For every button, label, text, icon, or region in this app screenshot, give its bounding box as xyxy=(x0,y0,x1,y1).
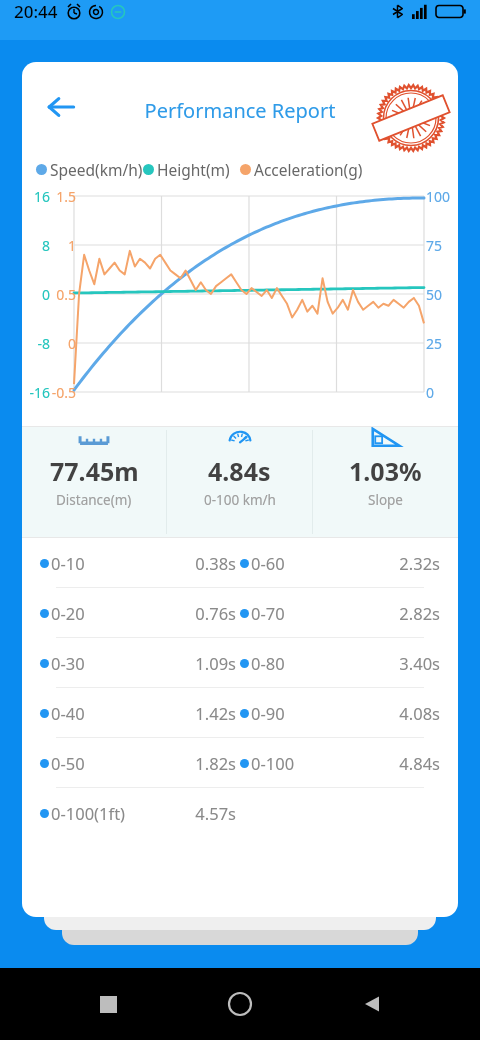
staticText: 0-30 xyxy=(51,652,85,674)
staticText: 0-10 xyxy=(51,552,85,574)
staticText: 4.08s xyxy=(240,702,440,724)
staticText: 1.5 xyxy=(50,187,76,206)
staticText: -0.5 xyxy=(50,383,76,402)
button[interactable]: 0-100(1ft) xyxy=(40,788,440,837)
staticText: 16 xyxy=(24,187,50,206)
staticText: 0 xyxy=(50,334,76,353)
staticText: 1.03% xyxy=(349,454,422,488)
staticText: 1.42s xyxy=(40,702,236,724)
staticText: 0-20 xyxy=(51,602,85,624)
staticText: Speed(km/h) xyxy=(50,159,143,180)
staticText: 1 xyxy=(50,236,76,255)
staticText: -8 xyxy=(24,334,50,353)
button[interactable]: 0-30 xyxy=(40,638,440,687)
staticText: 8 xyxy=(24,236,50,255)
staticText: 0.38s xyxy=(40,552,236,574)
staticText: 0-80 xyxy=(251,652,285,674)
staticText: 77.45m xyxy=(50,454,139,488)
staticText: 0.76s xyxy=(40,602,236,624)
button[interactable]: 0-50 xyxy=(40,738,440,787)
button[interactable]: 0-10 xyxy=(40,538,440,587)
staticText: Performance Report xyxy=(22,97,458,124)
button[interactable]: Home xyxy=(216,980,264,1028)
staticText: 100 xyxy=(426,187,458,206)
staticText: 0-100(1ft) xyxy=(51,802,126,824)
button[interactable]: 4.84s xyxy=(167,426,312,509)
staticText: 0 xyxy=(24,285,50,304)
staticText: 0-100 km/h xyxy=(204,491,276,509)
staticText: 0-60 xyxy=(251,552,285,574)
staticText: Slope xyxy=(368,491,403,509)
button[interactable]: Back xyxy=(348,980,396,1028)
button[interactable]: Back xyxy=(38,84,84,130)
staticText: 25 xyxy=(426,334,458,353)
staticText: Acceleration(g) xyxy=(254,159,363,180)
staticText: 3.40s xyxy=(240,652,440,674)
staticText: 2.32s xyxy=(240,552,440,574)
staticText: 50 xyxy=(426,285,458,304)
staticText: 4.84s xyxy=(240,752,440,774)
button[interactable]: 1.03% xyxy=(313,426,458,509)
staticText: 75 xyxy=(426,236,458,255)
staticText: 0 xyxy=(426,383,458,402)
staticText: 0-90 xyxy=(251,702,285,724)
staticText: 1.09s xyxy=(40,652,236,674)
staticText: 4.84s xyxy=(208,454,271,488)
staticText: 1.82s xyxy=(40,752,236,774)
staticText: 4.57s xyxy=(40,802,236,824)
staticText: 20:44 xyxy=(14,0,58,23)
button[interactable]: 77.45m xyxy=(22,426,166,509)
button[interactable]: Recent apps xyxy=(84,980,132,1028)
staticText: 0-100 xyxy=(251,752,295,774)
button[interactable]: 0-20 xyxy=(40,588,440,637)
staticText: 0-50 xyxy=(51,752,85,774)
staticText: 0.5 xyxy=(50,285,76,304)
staticText: Distance(m) xyxy=(56,491,132,509)
staticText: 2.82s xyxy=(240,602,440,624)
staticText: 0-40 xyxy=(51,702,85,724)
staticText: 0-70 xyxy=(251,602,285,624)
button[interactable]: 0-40 xyxy=(40,688,440,737)
staticText: -16 xyxy=(24,383,50,402)
staticText: Height(m) xyxy=(157,159,230,180)
